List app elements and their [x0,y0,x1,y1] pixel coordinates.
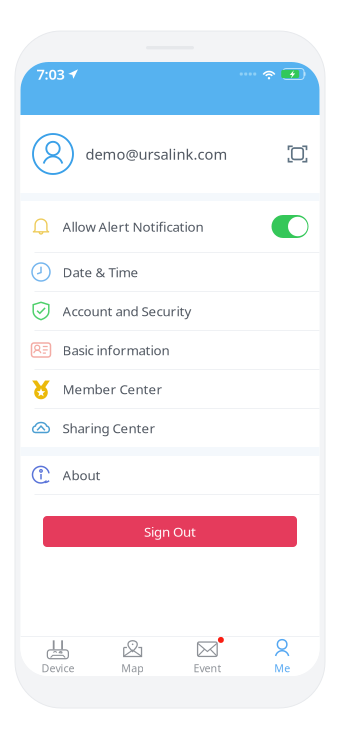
staticText: Me [274,661,290,675]
staticText: Event [193,661,221,675]
button[interactable]: Member Center [20,370,319,408]
button[interactable]: Sharing Center [20,409,319,447]
button[interactable]: Allow Alert Notification [20,201,319,252]
staticText: Account and Security [62,302,191,320]
button[interactable]: Sign Out [43,516,297,547]
staticText: Sharing Center [62,419,155,437]
button[interactable]: Basic information [20,331,319,369]
button[interactable]: Map [95,637,170,676]
staticText: Sign Out [144,523,196,540]
button[interactable]: Event [170,637,245,676]
staticText: Allow Alert Notification [62,218,203,235]
button[interactable]: About [20,456,319,494]
button[interactable]: demo@ursalink.com [20,115,319,193]
staticText: Member Center [62,380,162,398]
staticText: 7:03 [36,64,64,84]
button[interactable]: Device [20,637,95,676]
button[interactable]: Me [245,637,320,676]
staticText: About [62,466,100,484]
staticText: Basic information [62,341,169,359]
button[interactable]: Account and Security [20,292,319,330]
staticText: Map [121,661,144,675]
staticText: Device [41,661,74,675]
staticText: demo@ursalink.com [85,144,227,164]
staticText: Date & Time [62,263,138,281]
button[interactable]: Date & Time [20,253,319,291]
